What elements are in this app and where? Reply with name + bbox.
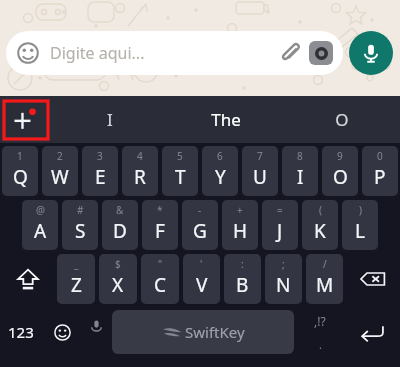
staticText: +: [237, 203, 243, 217]
button[interactable]: 7: [242, 146, 278, 196]
staticText: D: [113, 218, 127, 244]
staticText: I: [107, 108, 113, 131]
staticText: Digite aqui...: [50, 42, 277, 64]
staticText: T: [175, 164, 186, 190]
staticText: =: [277, 203, 283, 217]
button[interactable]: 4: [122, 146, 158, 196]
staticText: S: [75, 218, 86, 244]
staticText: .: [319, 337, 322, 352]
button[interactable]: 0: [362, 146, 398, 196]
staticText: F: [155, 218, 165, 244]
staticText: Y: [215, 164, 226, 190]
button[interactable]: _: [57, 254, 95, 304]
staticText: C: [154, 272, 167, 298]
button[interactable]: Voice message: [349, 31, 393, 75]
staticText: N: [276, 272, 291, 298]
button[interactable]: Attach: [277, 39, 305, 67]
button[interactable]: @: [22, 200, 58, 250]
staticText: _: [74, 257, 79, 271]
staticText: -: [198, 203, 202, 217]
button[interactable]: 2: [42, 146, 78, 196]
button[interactable]: =: [262, 200, 298, 250]
staticText: 2: [57, 149, 63, 163]
staticText: ): [359, 203, 362, 217]
staticText: 1: [17, 149, 23, 163]
button[interactable]: +: [222, 200, 258, 250]
staticText: H: [233, 218, 248, 244]
staticText: ": [158, 257, 163, 271]
staticText: P: [374, 164, 386, 190]
button[interactable]: 1: [2, 146, 38, 196]
button[interactable]: -: [182, 200, 218, 250]
button[interactable]: Space: [112, 310, 294, 354]
button[interactable]: The: [168, 96, 284, 143]
staticText: 3: [97, 149, 103, 163]
button[interactable]: 5: [162, 146, 198, 196]
button[interactable]: Emoji: [15, 40, 41, 66]
button[interactable]: 3: [82, 146, 118, 196]
staticText: I: [297, 164, 304, 190]
staticText: W: [51, 164, 69, 190]
button[interactable]: 6: [202, 146, 238, 196]
button[interactable]: Add: [0, 96, 52, 143]
button[interactable]: Voice input: [82, 308, 110, 356]
staticText: 8: [297, 149, 303, 163]
staticText: &: [116, 203, 124, 217]
staticText: #: [77, 203, 84, 217]
staticText: 7: [257, 149, 263, 163]
staticText: Z: [71, 272, 82, 298]
staticText: @: [36, 203, 45, 217]
button[interactable]: :: [224, 254, 261, 304]
button[interactable]: Emoji: [6, 31, 343, 75]
staticText: 4: [137, 149, 143, 163]
staticText: E: [95, 164, 106, 190]
staticText: X: [112, 272, 124, 298]
button[interactable]: Emoji keyboard: [42, 308, 82, 356]
button[interactable]: *: [142, 200, 178, 250]
button[interactable]: ': [183, 254, 220, 304]
staticText: *: [157, 203, 163, 217]
staticText: The: [211, 108, 241, 131]
button[interactable]: ): [342, 200, 378, 250]
staticText: 0: [377, 149, 383, 163]
button[interactable]: Shift: [0, 254, 55, 304]
button[interactable]: I: [52, 96, 168, 143]
button[interactable]: Backspace: [345, 254, 400, 304]
staticText: 5: [177, 149, 183, 163]
button[interactable]: #: [62, 200, 98, 250]
staticText: M: [316, 272, 334, 298]
staticText: L: [355, 218, 365, 244]
staticText: A: [34, 218, 47, 244]
button[interactable]: Camera: [309, 41, 333, 65]
staticText: K: [314, 218, 326, 244]
staticText: J: [277, 218, 283, 244]
staticText: Q: [13, 164, 28, 190]
button[interactable]: (: [302, 200, 338, 250]
staticText: R: [134, 164, 146, 190]
staticText: (: [319, 203, 322, 217]
button[interactable]: 123: [0, 308, 42, 356]
staticText: ;: [282, 257, 285, 271]
staticText: ': [200, 257, 203, 271]
staticText: $: [115, 257, 121, 271]
button[interactable]: ,!?: [296, 308, 344, 356]
button[interactable]: $: [99, 254, 137, 304]
button[interactable]: O: [284, 96, 400, 143]
staticText: O: [335, 108, 349, 131]
button[interactable]: 9: [322, 146, 358, 196]
staticText: G: [193, 218, 207, 244]
staticText: 9: [337, 149, 343, 163]
button[interactable]: ": [141, 254, 179, 304]
staticText: 123: [8, 322, 34, 342]
staticText: ,!?: [314, 313, 326, 329]
staticText: O: [333, 164, 348, 190]
staticText: 6: [217, 149, 223, 163]
button[interactable]: 8: [282, 146, 318, 196]
button[interactable]: Enter: [344, 308, 400, 356]
button[interactable]: ;: [265, 254, 302, 304]
staticText: :: [241, 257, 244, 271]
button[interactable]: /: [306, 254, 343, 304]
button[interactable]: &: [102, 200, 138, 250]
staticText: U: [253, 164, 267, 190]
staticText: SwiftKey: [185, 322, 245, 342]
